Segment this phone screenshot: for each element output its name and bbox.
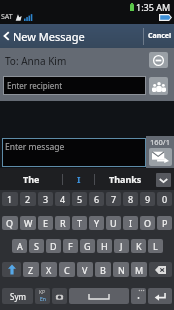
button[interactable]: Remove recipient	[149, 52, 168, 68]
button[interactable]: Voice input	[52, 288, 67, 304]
staticText: New Message	[13, 29, 85, 44]
staticText: P	[162, 217, 168, 229]
staticText: N	[118, 264, 125, 276]
button[interactable]: Open contacts	[149, 77, 168, 95]
button[interactable]: Enter recipient	[7, 77, 142, 94]
button[interactable]: T	[72, 216, 87, 230]
staticText: 9	[145, 193, 151, 205]
staticText: 6	[94, 193, 100, 205]
button[interactable]: K	[131, 239, 146, 253]
staticText: U	[110, 217, 117, 229]
button[interactable]: X	[41, 262, 57, 277]
staticText: 160/1	[150, 137, 170, 147]
staticText: 7	[111, 193, 117, 205]
button[interactable]: Space	[69, 288, 129, 304]
staticText: B	[100, 264, 106, 276]
button[interactable]: Shift	[2, 262, 21, 277]
button[interactable]: G	[80, 239, 95, 253]
button[interactable]: 0	[157, 192, 172, 206]
staticText: Enter recipient	[7, 80, 63, 91]
button[interactable]: Enter	[148, 288, 172, 304]
button[interactable]: Z	[23, 262, 39, 277]
staticText: 0	[162, 193, 168, 205]
button[interactable]: R	[55, 216, 70, 230]
staticText: Sym	[10, 291, 26, 302]
button[interactable]: I	[123, 216, 138, 230]
button[interactable]: W	[20, 216, 36, 230]
button[interactable]: More suggestions	[156, 173, 171, 187]
button[interactable]: New Message	[0, 24, 91, 48]
button[interactable]: C	[59, 262, 75, 277]
button[interactable]: H	[97, 239, 112, 253]
staticText: SAT	[1, 12, 13, 22]
button[interactable]: Change language	[35, 288, 50, 304]
staticText: R	[60, 217, 66, 229]
button[interactable]: E	[38, 216, 53, 230]
button[interactable]: 1	[2, 192, 18, 206]
staticText: 2	[25, 193, 31, 205]
staticText: E	[43, 217, 49, 229]
staticText: 4	[60, 193, 66, 205]
button[interactable]: 7	[106, 192, 121, 206]
button[interactable]: O	[140, 216, 155, 230]
staticText: G	[84, 240, 91, 252]
staticText: Cancel	[148, 31, 172, 41]
button[interactable]: I	[63, 168, 94, 190]
button[interactable]: L	[148, 239, 163, 253]
button[interactable]: D	[46, 239, 61, 253]
button[interactable]: 5	[72, 192, 87, 206]
staticText: 1	[7, 193, 13, 205]
staticText: T	[77, 217, 83, 229]
staticText: Y	[94, 217, 100, 229]
button[interactable]: M	[131, 262, 147, 277]
button[interactable]: J	[114, 239, 129, 253]
staticText: 3	[43, 193, 49, 205]
staticText: KP	[39, 289, 46, 296]
button[interactable]: The	[0, 168, 62, 190]
button[interactable]: Send message	[149, 148, 172, 166]
button[interactable]: A	[12, 239, 27, 253]
staticText: M	[135, 264, 144, 276]
button[interactable]: 8	[123, 192, 138, 206]
button[interactable]	[131, 288, 146, 304]
button[interactable]: 2	[20, 192, 36, 206]
staticText: Z	[28, 264, 34, 276]
button[interactable]: Enter message	[5, 141, 145, 166]
button[interactable]: U	[106, 216, 121, 230]
button[interactable]: 6	[89, 192, 104, 206]
staticText: V	[82, 264, 88, 276]
button[interactable]: S	[29, 239, 44, 253]
button[interactable]: Thanks	[95, 168, 155, 190]
staticText: 1:35 AM	[136, 1, 171, 13]
staticText: W	[24, 217, 33, 229]
staticText: C	[64, 264, 70, 276]
button[interactable]: F	[63, 239, 78, 253]
button[interactable]: 3	[38, 192, 53, 206]
staticText: S	[34, 240, 39, 252]
staticText: J	[120, 240, 123, 252]
staticText: H	[101, 240, 108, 252]
button[interactable]: Sym	[2, 288, 33, 304]
staticText: To: Anna Kim	[5, 54, 67, 68]
staticText: D	[50, 240, 57, 252]
button[interactable]: Y	[89, 216, 104, 230]
staticText: X	[46, 264, 52, 276]
button[interactable]: 9	[140, 192, 155, 206]
button[interactable]: Q	[2, 216, 18, 230]
button[interactable]: Backspace	[149, 262, 172, 277]
button[interactable]: 4	[55, 192, 70, 206]
button[interactable]: P	[157, 216, 172, 230]
staticText: Enter message	[5, 141, 65, 153]
staticText: K	[136, 240, 142, 252]
button[interactable]: Cancel	[144, 24, 174, 48]
staticText: I	[129, 217, 133, 229]
staticText: 8	[128, 193, 134, 205]
staticText: L	[153, 240, 158, 252]
staticText: O	[144, 217, 152, 229]
staticText: Q	[6, 217, 14, 229]
button[interactable]: B	[95, 262, 111, 277]
staticText: Thanks	[109, 173, 142, 185]
button[interactable]: V	[77, 262, 93, 277]
button[interactable]: N	[113, 262, 129, 277]
staticText: En	[40, 296, 46, 303]
